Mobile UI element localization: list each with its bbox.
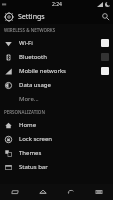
staticText: Wi-Fi: [19, 39, 33, 47]
button[interactable]: Home: [29, 184, 57, 200]
button[interactable]: Home: [0, 118, 113, 132]
staticText: PERSONALIZATION: [4, 109, 45, 115]
button[interactable]: Back: [57, 184, 85, 200]
button[interactable]: Search: [98, 9, 113, 24]
staticText: Data usage: [19, 81, 51, 89]
button[interactable]: Menu: [85, 184, 113, 200]
button[interactable]: Lock screen: [0, 132, 113, 146]
staticText: Status bar: [19, 163, 48, 171]
staticText: More...: [19, 95, 39, 103]
staticText: Themes: [19, 149, 42, 157]
button[interactable]: Recents: [0, 184, 29, 200]
staticText: WIRELESS & NETWORKS: [4, 27, 56, 33]
button[interactable]: Wi-Fi toggle: [101, 39, 109, 47]
button[interactable]: Wi-Fi: [0, 36, 113, 50]
button[interactable]: Status bar: [0, 160, 113, 174]
button[interactable]: Themes: [0, 146, 113, 160]
staticText: Lock screen: [19, 135, 53, 143]
staticText: Home: [19, 121, 37, 129]
button[interactable]: Bluetooth: [0, 50, 113, 64]
button[interactable]: Mobile networks toggle: [101, 67, 109, 75]
staticText: Mobile networks: [19, 67, 66, 75]
staticText: 2:24: [52, 1, 62, 8]
staticText: Settings: [18, 12, 45, 22]
button[interactable]: Mobile networks: [0, 64, 113, 78]
button[interactable]: Data usage: [0, 78, 113, 92]
staticText: Bluetooth: [19, 53, 47, 61]
button[interactable]: More...: [0, 92, 113, 106]
